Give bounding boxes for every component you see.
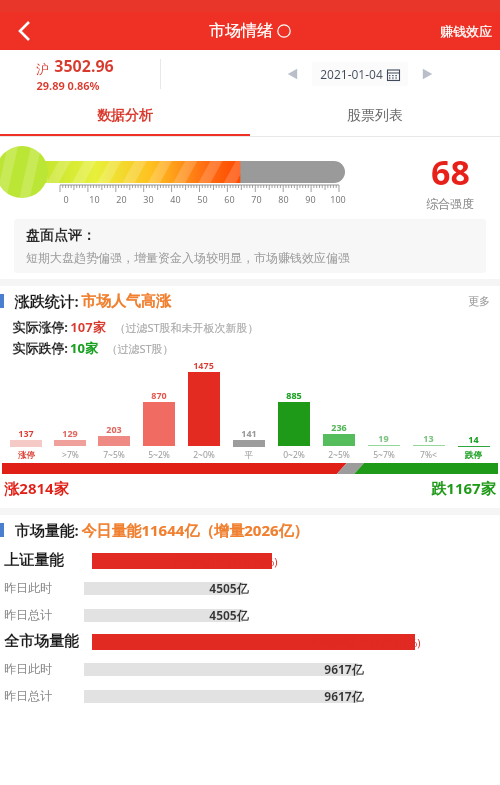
button[interactable]: Back (4, 12, 44, 50)
staticText: 全市场量能 (4, 632, 79, 651)
staticText: 30 (143, 193, 154, 205)
button[interactable]: 股票列表 (250, 98, 500, 134)
staticText: 5~7% (373, 449, 395, 461)
staticText: 7~5% (103, 449, 125, 461)
staticText: 实际跌停: (10, 339, 70, 357)
staticText: 跌1167家 (431, 478, 496, 498)
staticText: 10家 (70, 339, 98, 357)
button[interactable]: 更多 (468, 294, 490, 308)
staticText: 0 (63, 193, 69, 205)
button[interactable]: Previous day (280, 61, 306, 87)
staticText: 涨停 (18, 450, 35, 461)
staticText: 9617亿 (324, 661, 364, 677)
staticText: 2021-01-04 (320, 66, 383, 82)
staticText: 昨日总计 (4, 607, 52, 622)
staticText: 90 (305, 193, 316, 205)
button[interactable]: Next day (414, 61, 440, 87)
staticText: 2~0% (193, 449, 215, 461)
staticText: 5~2% (148, 449, 170, 461)
staticText: 7%< (420, 449, 437, 461)
staticText: 0~2% (283, 449, 305, 461)
staticText: 涨跌统计: (12, 291, 81, 311)
staticText: >7% (62, 449, 79, 461)
staticText: 14 (468, 433, 479, 445)
staticText: 综合强度 (426, 196, 474, 211)
button[interactable]: 赚钱效应 (440, 23, 492, 39)
staticText: 4505亿 (209, 580, 249, 596)
staticText: 赚钱效应 (440, 23, 492, 39)
staticText: 昨日此时 (4, 661, 52, 676)
staticText: 40 (170, 193, 181, 205)
staticText: 昨日此时 (4, 580, 52, 595)
staticText: 市场量能: (12, 520, 81, 540)
staticText: 70 (251, 193, 262, 205)
staticText: 885 (286, 389, 302, 401)
staticText: (+21.07%) (370, 635, 421, 650)
button[interactable]: 数据分析 (0, 98, 250, 134)
staticText: 10 (89, 193, 100, 205)
staticText: 68 (431, 149, 470, 195)
staticText: 19 (378, 432, 389, 444)
staticText: 236 (331, 421, 347, 433)
staticText: （过滤ST股） (106, 341, 174, 356)
button[interactable]: 2021-01-04 (320, 66, 400, 82)
staticText: 平 (244, 450, 253, 461)
staticText: 129 (62, 427, 78, 439)
staticText: 80 (278, 193, 289, 205)
staticText: 870 (151, 389, 167, 401)
staticText: 昨日总计 (4, 688, 52, 703)
staticText: 29.89 0.86% (36, 78, 100, 93)
staticText: 137 (18, 427, 34, 439)
staticText: 2~5% (328, 449, 350, 461)
staticText: 3502.96 (54, 55, 114, 77)
staticText: 市场情绪 (209, 21, 273, 41)
staticText: 100 (330, 193, 346, 205)
staticText: 9617亿 (324, 688, 364, 704)
staticText: 60 (224, 193, 235, 205)
staticText: （过滤ST股和未开板次新股） (114, 320, 259, 335)
staticText: (+16.18%) (227, 554, 278, 569)
staticText: 盘面点评： (26, 227, 96, 245)
staticText: 上证量能 (4, 551, 64, 570)
staticText: 203 (106, 423, 122, 435)
staticText: 更多 (468, 294, 490, 308)
staticText: 1475 (193, 359, 214, 371)
staticText: 107家 (70, 318, 106, 336)
staticText: 今日量能11644亿（增量2026亿） (81, 520, 309, 540)
staticText: 20 (116, 193, 127, 205)
staticText: 数据分析 (97, 107, 153, 125)
staticText: 涨2814家 (4, 478, 69, 498)
staticText: 短期大盘趋势偏强，增量资金入场较明显，市场赚钱效应偏强 (26, 250, 350, 265)
staticText: 沪 (36, 61, 49, 77)
staticText: 50 (197, 193, 208, 205)
staticText: 141 (241, 427, 257, 439)
staticText: 13 (423, 432, 434, 444)
staticText: 4505亿 (209, 607, 249, 623)
staticText: 实际涨停: (10, 318, 70, 336)
staticText: 市场人气高涨 (81, 292, 171, 311)
staticText: 跌停 (465, 450, 482, 461)
staticText: 股票列表 (347, 107, 403, 125)
